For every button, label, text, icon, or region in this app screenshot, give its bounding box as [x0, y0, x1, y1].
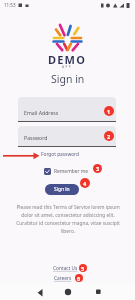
button[interactable]: Forgot password — [41, 151, 79, 158]
staticText: Forgot password — [41, 151, 79, 158]
staticText: Password — [24, 134, 48, 141]
button[interactable]: Password — [18, 126, 116, 147]
staticText: Contact Us — [53, 265, 78, 272]
staticText: 2 — [107, 133, 111, 140]
button[interactable]: Email Address — [18, 97, 116, 122]
staticText: 3 — [96, 165, 100, 172]
button[interactable] — [44, 168, 51, 175]
staticText: 1 — [107, 108, 111, 115]
staticText: 4 — [83, 180, 87, 187]
staticText: Careers — [54, 275, 72, 282]
button[interactable] — [30, 285, 46, 300]
button[interactable] — [60, 285, 76, 300]
button[interactable]: Sign in — [45, 184, 79, 195]
staticText: DEMO — [48, 52, 87, 67]
staticText: 5 — [81, 265, 85, 272]
button[interactable]: Contact Us — [53, 265, 78, 272]
staticText: 11:53 — [4, 2, 16, 8]
staticText: Sign in — [54, 186, 70, 193]
staticText: APP — [62, 65, 73, 69]
staticText: Sign in — [51, 72, 85, 86]
button[interactable] — [90, 285, 106, 300]
staticText: Please read this Terms of Service lorem … — [16, 204, 120, 235]
staticText: 6 — [77, 275, 81, 282]
button[interactable]: Careers — [54, 275, 72, 282]
staticText: Email Address — [24, 109, 59, 116]
staticText: Remember me — [54, 168, 89, 175]
